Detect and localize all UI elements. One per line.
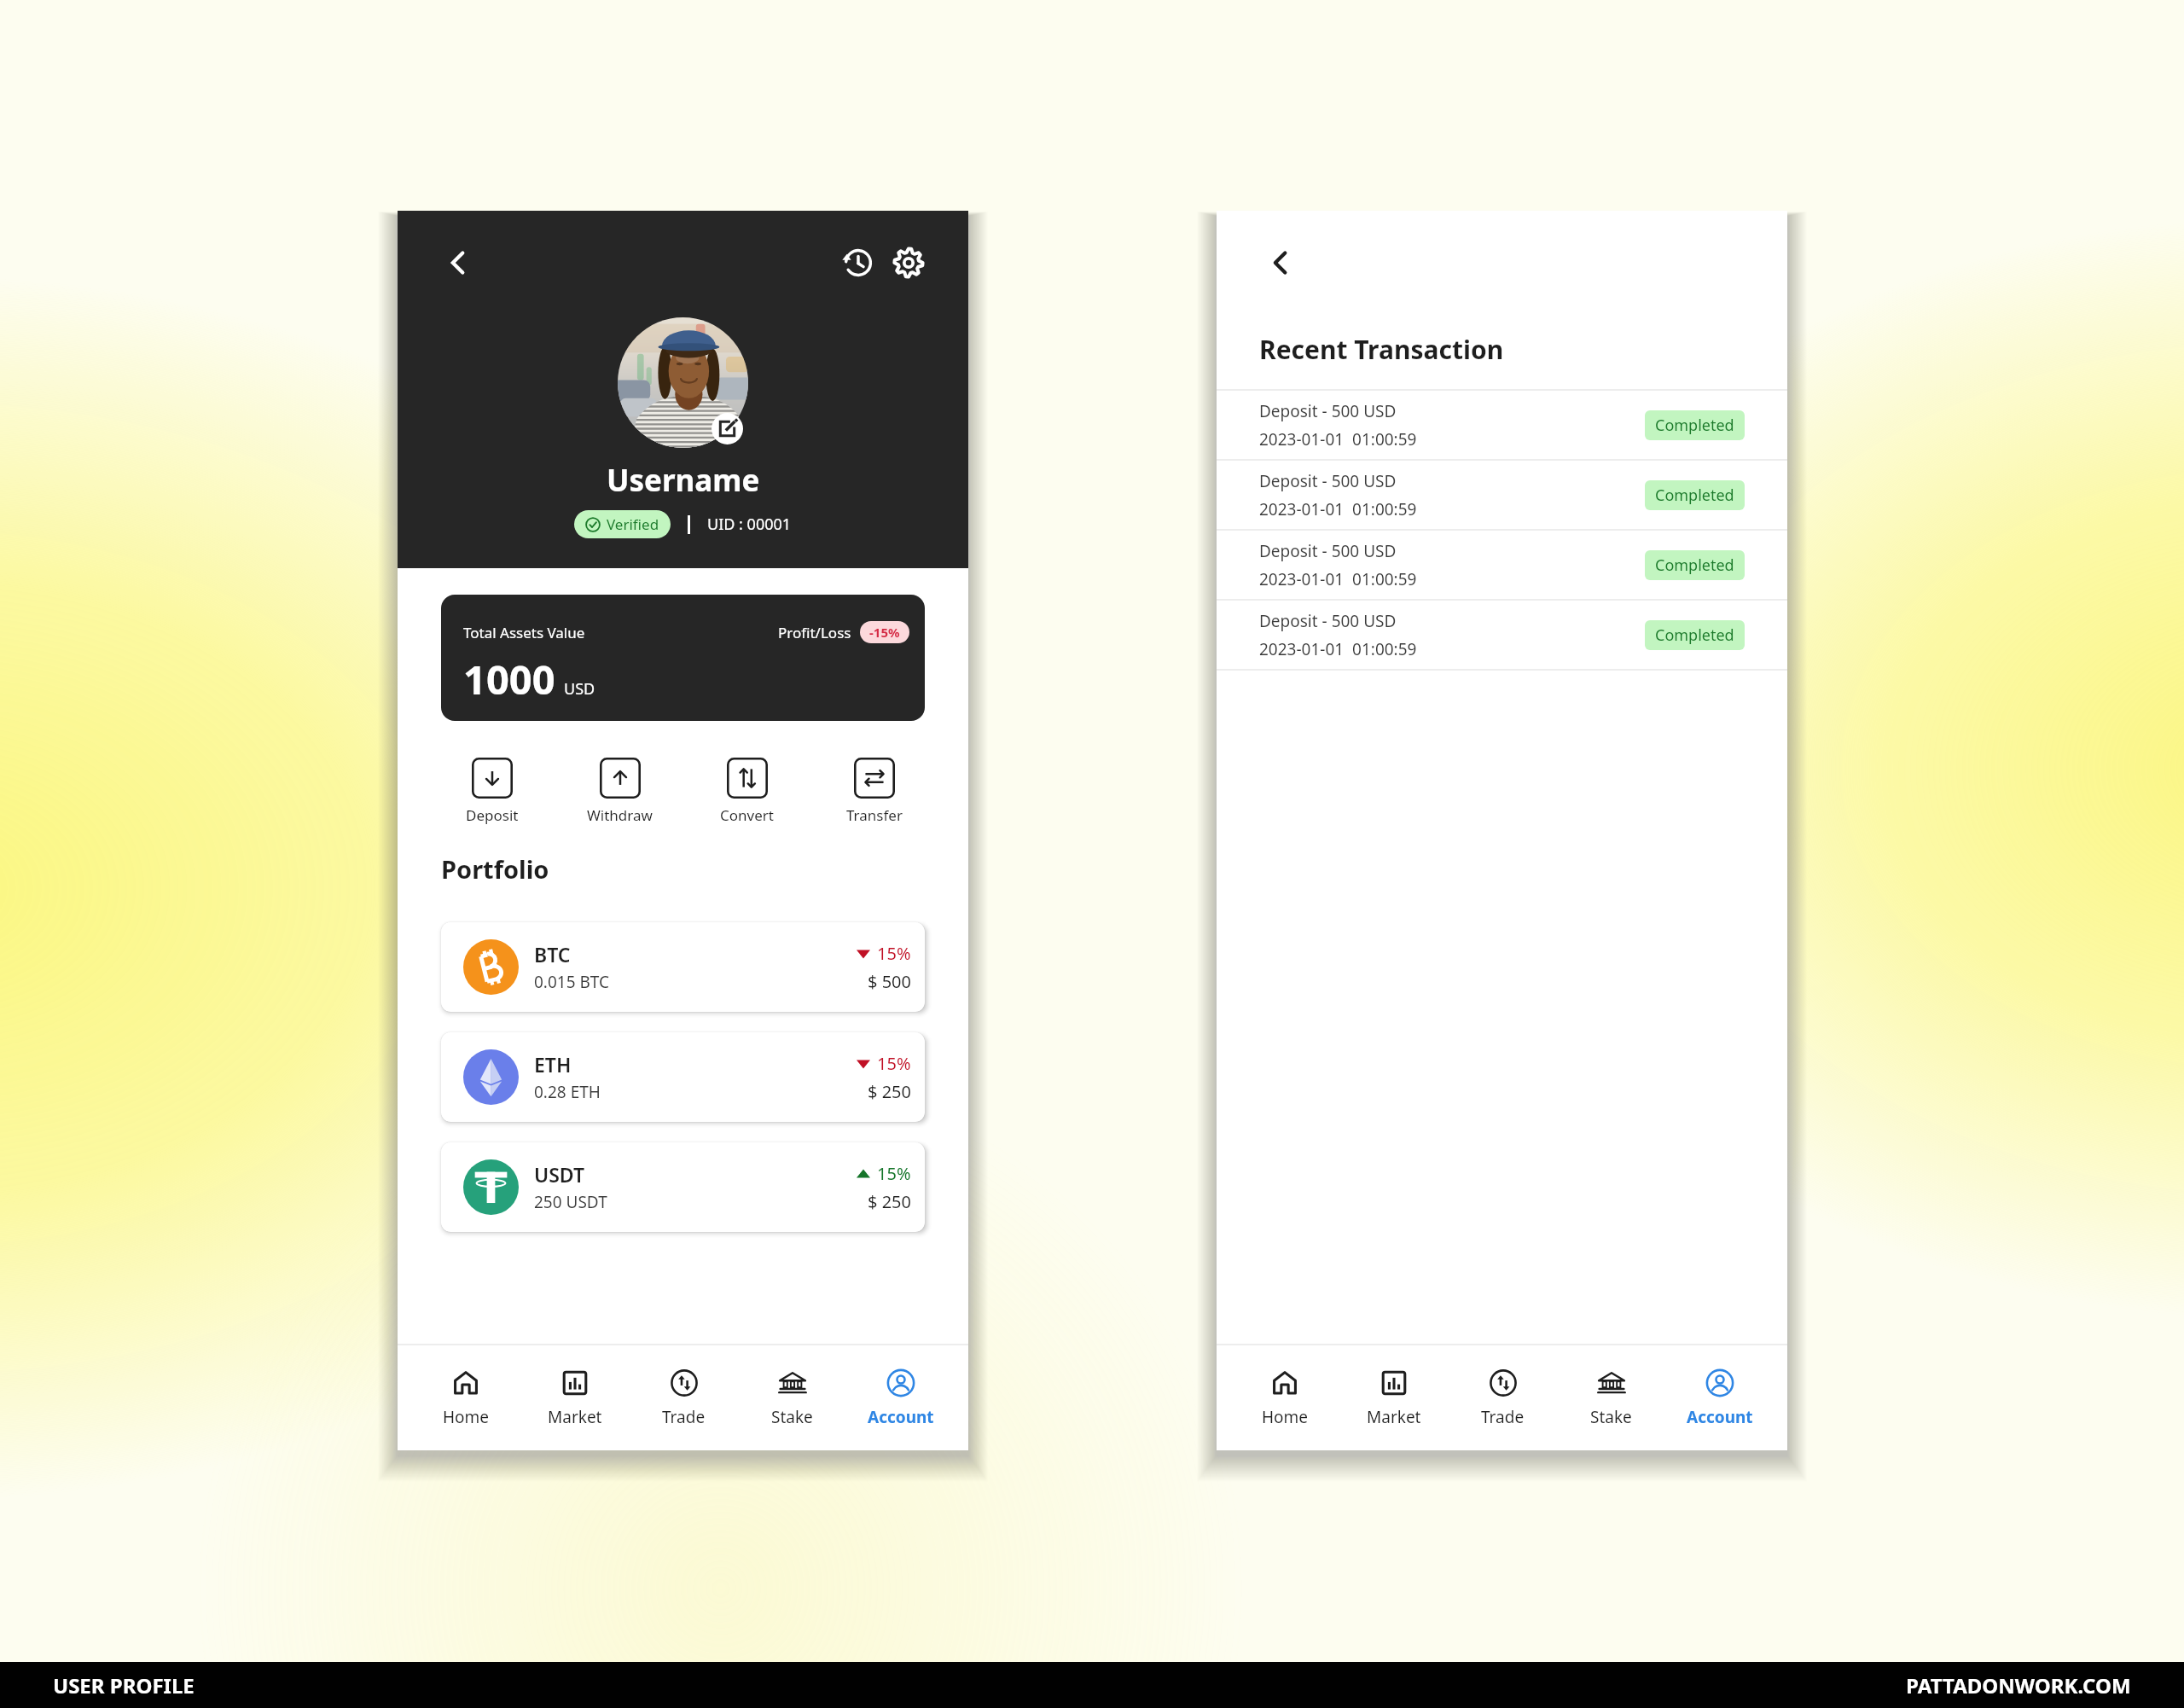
button[interactable]: Deposit - 500 USD [1217,601,1787,669]
staticText: Deposit - 500 USD [1259,400,1397,422]
staticText: UID : 00001 [707,514,792,535]
staticText: Recent Transaction [1259,332,1504,367]
staticText: 250 USDT [534,1191,607,1213]
button[interactable]: Home [1230,1345,1339,1450]
staticText: Deposit - 500 USD [1259,610,1397,632]
staticText: $ 250 [868,1080,911,1103]
staticText: Account [868,1406,934,1428]
staticText: Market [548,1406,602,1428]
staticText: Deposit - 500 USD [1259,470,1397,492]
staticText: 15% [877,1052,911,1075]
staticText: Stake [1590,1406,1632,1428]
staticText: USD [564,678,595,700]
button[interactable]: Trade [630,1345,738,1450]
staticText: ETH [534,1051,572,1078]
staticText: Home [443,1406,490,1428]
staticText: Home [1262,1406,1309,1428]
staticText: Portfolio [441,852,549,886]
button[interactable]: Deposit - 500 USD [1217,531,1787,599]
staticText: Convert [720,805,774,825]
button[interactable]: Verified [574,510,671,538]
staticText: Market [1367,1406,1421,1428]
button[interactable]: Account [1665,1345,1774,1450]
button[interactable]: Edit profile picture [712,413,743,444]
button[interactable]: Deposit [428,758,556,825]
button[interactable]: Withdraw [556,758,683,825]
staticText: BTC [534,941,571,967]
button[interactable]: Total Assets Value [441,595,925,721]
staticText: 2023-01-01 01:00:59 [1259,428,1417,450]
button[interactable]: Settings [888,242,929,283]
staticText: Deposit [466,805,519,825]
staticText: 1000 [463,652,555,706]
button[interactable]: BTC [441,922,925,1012]
staticText: Completed [1655,415,1734,436]
button[interactable]: Market [520,1345,630,1450]
button[interactable]: Back [437,242,478,283]
staticText: USER PROFILE [53,1671,195,1699]
staticText: $ 250 [868,1190,911,1213]
staticText: Withdraw [587,805,653,825]
staticText: 15% [877,1162,911,1185]
staticText: Account [1687,1406,1753,1428]
staticText: Completed [1655,485,1734,506]
button[interactable]: USDT [441,1142,925,1232]
button[interactable]: Convert [683,758,810,825]
staticText: Total Assets Value [463,623,585,642]
staticText: 0.28 ETH [534,1081,601,1103]
button[interactable]: Stake [1557,1345,1665,1450]
button[interactable]: Deposit - 500 USD [1217,391,1787,459]
staticText: Completed [1655,555,1734,576]
staticText: Transfer [846,805,903,825]
staticText: USDT [534,1161,585,1188]
staticText: Deposit - 500 USD [1259,540,1397,562]
staticText: Trade [1481,1406,1525,1428]
button[interactable]: Deposit - 500 USD [1217,461,1787,529]
staticText: Verified [607,514,659,534]
button[interactable]: Home [411,1345,520,1450]
staticText: 2023-01-01 01:00:59 [1259,568,1417,590]
staticText: Completed [1655,625,1734,646]
staticText: Stake [771,1406,813,1428]
staticText: 2023-01-01 01:00:59 [1259,498,1417,520]
button[interactable]: Transfer [810,758,938,825]
staticText: Profit/Loss [778,623,851,642]
button[interactable]: Account [846,1345,955,1450]
button[interactable]: Trade [1449,1345,1557,1450]
button[interactable]: Market [1339,1345,1449,1450]
staticText: Trade [662,1406,706,1428]
staticText: -15% [869,624,900,641]
staticText: PATTADONWORK.COM [1906,1671,2131,1699]
staticText: $ 500 [868,970,911,993]
staticText: 0.015 BTC [534,971,610,993]
staticText: Username [607,460,760,501]
staticText: 2023-01-01 01:00:59 [1259,638,1417,660]
button[interactable]: History [838,242,879,283]
staticText: 15% [877,942,911,965]
button[interactable]: Back [1259,242,1300,283]
button[interactable]: Stake [738,1345,846,1450]
button[interactable]: ETH [441,1032,925,1122]
